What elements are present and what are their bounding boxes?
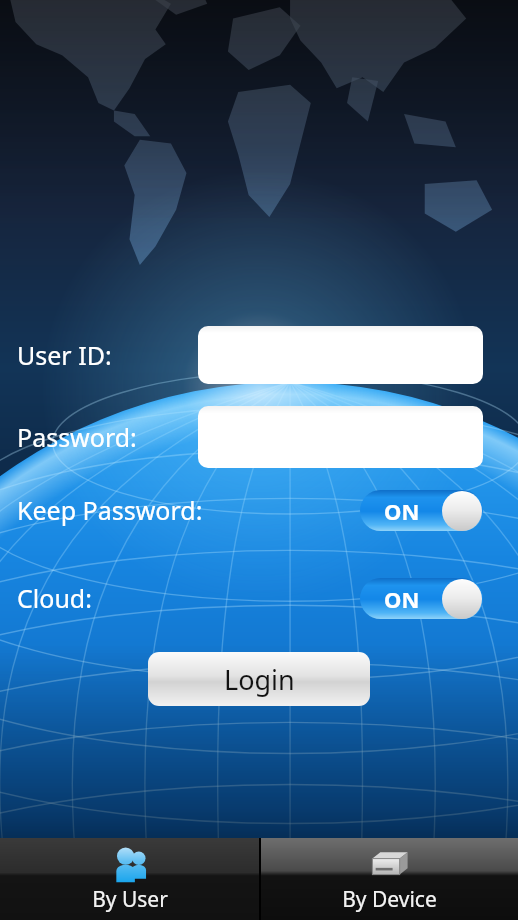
- staticText: Keep Password:: [17, 493, 203, 527]
- button[interactable]: Toggle on: [360, 578, 483, 619]
- staticText: ON: [384, 584, 420, 614]
- staticText: By Device: [342, 885, 437, 914]
- staticText: Login: [224, 661, 295, 698]
- staticText: ON: [384, 496, 420, 526]
- staticText: By User: [92, 885, 168, 914]
- button[interactable]: Toggle on: [360, 490, 483, 531]
- button[interactable]: [198, 406, 483, 468]
- staticText: Password:: [17, 420, 137, 454]
- staticText: Cloud:: [17, 581, 92, 615]
- button[interactable]: Login: [148, 652, 370, 706]
- button[interactable]: [198, 326, 483, 384]
- button[interactable]: By User: [0, 838, 259, 920]
- button[interactable]: By Device: [261, 838, 518, 920]
- staticText: User ID:: [17, 338, 112, 372]
